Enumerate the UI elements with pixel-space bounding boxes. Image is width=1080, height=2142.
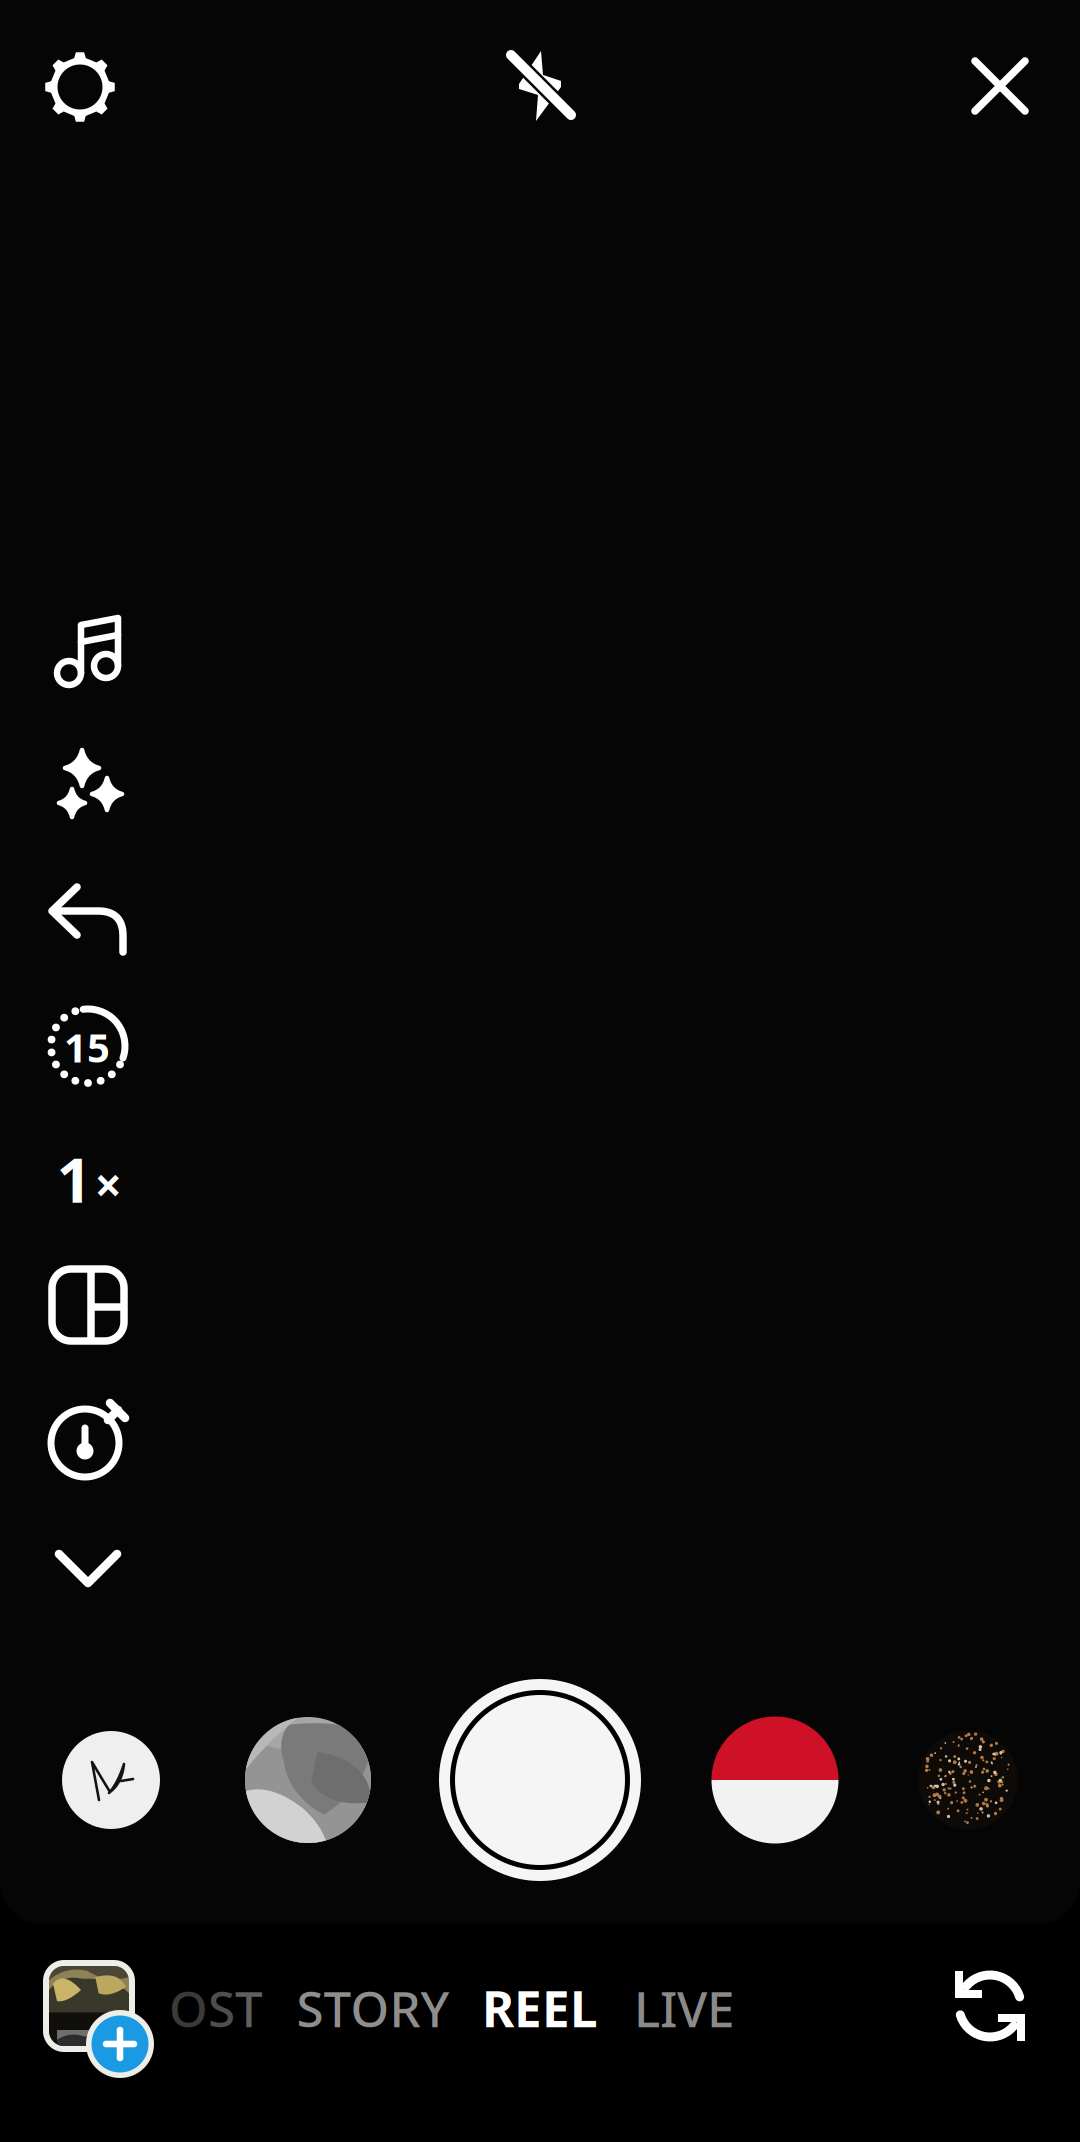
staticText: S xyxy=(208,1975,235,2041)
button[interactable]: Effect three xyxy=(0,0,1080,2142)
button[interactable]: Effect one xyxy=(0,0,1080,2142)
button[interactable]: No effect xyxy=(0,0,1080,2142)
button[interactable]: Flash is off xyxy=(0,0,1080,2142)
button[interactable]: LIVE xyxy=(0,0,1080,2142)
button[interactable]: REEL xyxy=(0,0,1080,2142)
staticText: STORY xyxy=(296,1975,449,2041)
staticText: 1 xyxy=(56,1138,91,1220)
staticText: × xyxy=(94,1152,121,1216)
button[interactable]: Open gallery xyxy=(0,0,1080,2142)
staticText: 15 xyxy=(64,1020,110,1073)
button[interactable]: Reel length 15 seconds xyxy=(0,0,1080,2142)
button[interactable]: Record xyxy=(0,0,1080,2142)
staticText: O xyxy=(169,1975,208,2041)
button[interactable]: STORY xyxy=(0,0,1080,2142)
button[interactable]: Effect two xyxy=(0,0,1080,2142)
button[interactable]: Camera settings xyxy=(0,0,1080,2142)
staticText: T xyxy=(235,1975,263,2041)
button[interactable]: Speed one times xyxy=(0,0,1080,2142)
button[interactable]: Switch camera xyxy=(0,0,1080,2142)
button[interactable]: Layout xyxy=(0,0,1080,2142)
button[interactable]: More options xyxy=(0,0,1080,2142)
button[interactable]: Undo xyxy=(0,0,1080,2142)
button[interactable]: Effects xyxy=(0,0,1080,2142)
button[interactable]: Timer xyxy=(0,0,1080,2142)
staticText: LIVE xyxy=(634,1975,734,2041)
button[interactable]: Add music xyxy=(0,0,1080,2142)
staticText: REEL xyxy=(482,1975,598,2041)
button[interactable]: O xyxy=(0,0,1080,2142)
button[interactable]: Close camera xyxy=(0,0,1080,2142)
